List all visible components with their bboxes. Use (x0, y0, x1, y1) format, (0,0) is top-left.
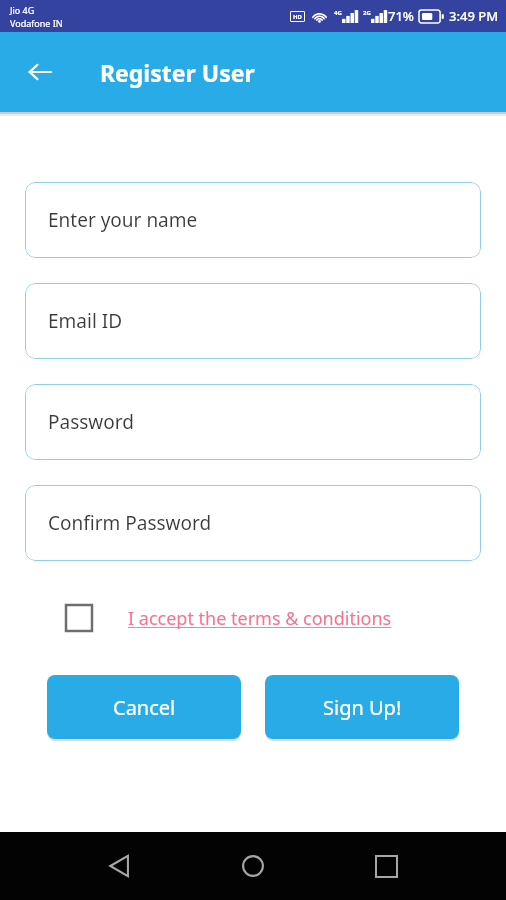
staticText: Register User (100, 57, 255, 88)
staticText: 2G (363, 9, 371, 17)
button[interactable]: Back (14, 46, 66, 98)
button[interactable]: Back (96, 842, 144, 890)
staticText: Confirm Password (48, 510, 212, 536)
button[interactable]: Email ID (25, 283, 481, 359)
button[interactable]: Recent apps (362, 842, 410, 890)
button[interactable]: Sign Up! (265, 675, 459, 739)
staticText: Email ID (48, 308, 123, 334)
staticText: Password (48, 409, 134, 435)
button[interactable]: Enter your name (25, 182, 481, 258)
staticText: Enter your name (48, 207, 198, 233)
button[interactable]: Home (229, 842, 277, 890)
button[interactable]: Accept terms checkbox (66, 605, 92, 631)
staticText: Vodafone IN (10, 17, 63, 29)
button[interactable]: Confirm Password (25, 485, 481, 561)
staticText: Sign Up! (323, 694, 402, 721)
staticText: Cancel (113, 694, 176, 721)
button[interactable]: I accept the terms & conditions (128, 606, 392, 631)
staticText: Jio 4G (10, 4, 35, 16)
staticText: 71% (388, 7, 414, 25)
staticText: 3:49 PM (449, 7, 499, 25)
button[interactable]: Password (25, 384, 481, 460)
staticText: HD (293, 13, 302, 21)
staticText: 4G (334, 9, 342, 17)
button[interactable]: Cancel (47, 675, 241, 739)
staticText: I accept the terms & conditions (128, 606, 392, 631)
